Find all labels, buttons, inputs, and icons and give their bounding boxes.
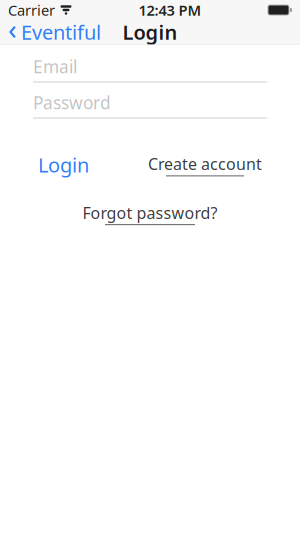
button[interactable]: Forgot password? xyxy=(82,199,217,228)
staticText: Password xyxy=(33,91,111,114)
staticText: Email xyxy=(33,55,77,78)
staticText: 12:43 PM xyxy=(138,0,201,20)
staticText: Eventiful xyxy=(21,19,101,45)
staticText: Carrier xyxy=(8,0,55,20)
staticText: Forgot password? xyxy=(82,202,217,223)
button[interactable]: Login xyxy=(38,148,89,181)
staticText: Create account xyxy=(148,153,262,174)
button[interactable]: Eventiful xyxy=(0,15,101,49)
staticText: Login xyxy=(122,19,177,45)
staticText: Login xyxy=(38,151,89,178)
button[interactable]: Create account xyxy=(148,150,262,179)
